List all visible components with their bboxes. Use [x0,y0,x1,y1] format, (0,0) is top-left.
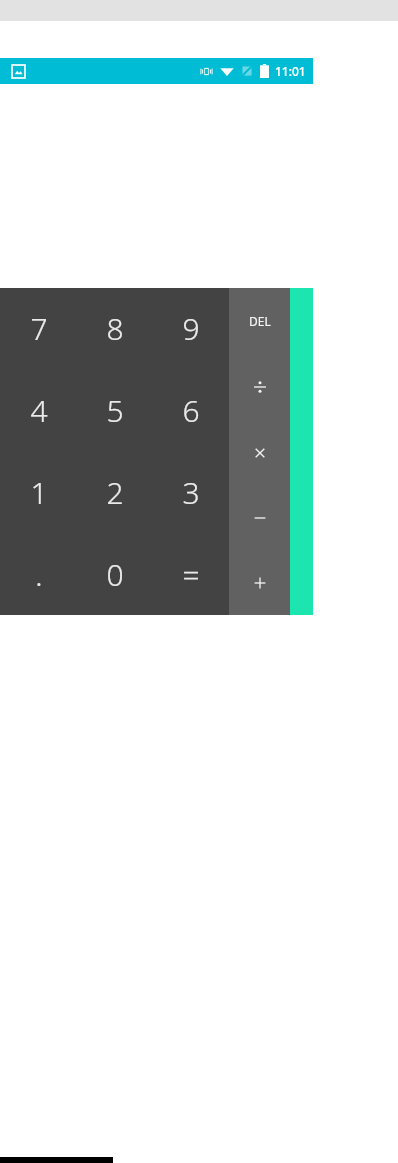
staticText: 1 [30,472,48,513]
staticText: 0 [106,554,124,595]
staticText: 4 [30,390,48,431]
staticText: 3 [182,472,200,513]
button[interactable]: Minus [229,485,290,550]
button[interactable]: 6 [153,369,229,451]
staticText: . [35,554,43,595]
staticText: 5 [106,390,124,431]
button[interactable]: 5 [77,369,153,451]
staticText: = [182,554,200,595]
staticText: 8 [106,308,124,349]
button[interactable]: 3 [153,451,229,533]
staticText: 9 [182,308,200,349]
staticText: DEL [249,313,271,329]
button[interactable]: Multiply [229,420,290,485]
button[interactable]: . [0,533,77,615]
button[interactable]: Divide [229,354,290,420]
staticText: 2 [106,472,124,513]
other: Screenshot notification [12,65,25,78]
button[interactable]: DEL [229,288,290,354]
staticText: 11:01 [275,63,306,79]
button[interactable]: 0 [77,533,153,615]
button[interactable]: = [153,533,229,615]
button[interactable]: 7 [0,288,77,369]
button[interactable]: 4 [0,369,77,451]
button[interactable]: 1 [0,451,77,533]
button[interactable]: 9 [153,288,229,369]
button[interactable]: 2 [77,451,153,533]
staticText: 7 [30,308,48,349]
button[interactable]: 8 [77,288,153,369]
button[interactable]: Plus [229,550,290,615]
staticText: 6 [182,390,200,431]
